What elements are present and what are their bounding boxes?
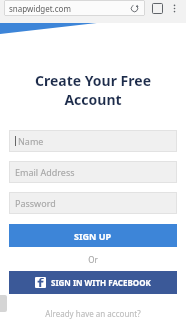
staticText: snapwidget.com xyxy=(9,3,128,14)
staticText: Password xyxy=(15,197,56,209)
button[interactable]: Email Address xyxy=(9,161,177,183)
button[interactable]: snapwidget.com xyxy=(4,0,145,16)
staticText: Or xyxy=(9,254,177,265)
button[interactable]: Reload xyxy=(128,2,140,14)
button[interactable]: SIGN IN WITH FACEBOOK xyxy=(9,271,177,294)
staticText: SIGN UP xyxy=(74,230,112,242)
button[interactable]: SIGN UP xyxy=(9,224,177,247)
button[interactable]: Password xyxy=(9,192,177,214)
staticText: SIGN IN WITH FACEBOOK xyxy=(51,277,151,288)
button[interactable]: More options xyxy=(167,1,181,15)
staticText: Email Address xyxy=(15,166,75,178)
button[interactable]: Already have an account? xyxy=(9,308,177,319)
staticText: Name xyxy=(18,135,44,147)
staticText: Create Your Free Account xyxy=(9,71,177,109)
button[interactable]: Tabs xyxy=(150,1,164,15)
button[interactable]: Name xyxy=(9,130,177,152)
